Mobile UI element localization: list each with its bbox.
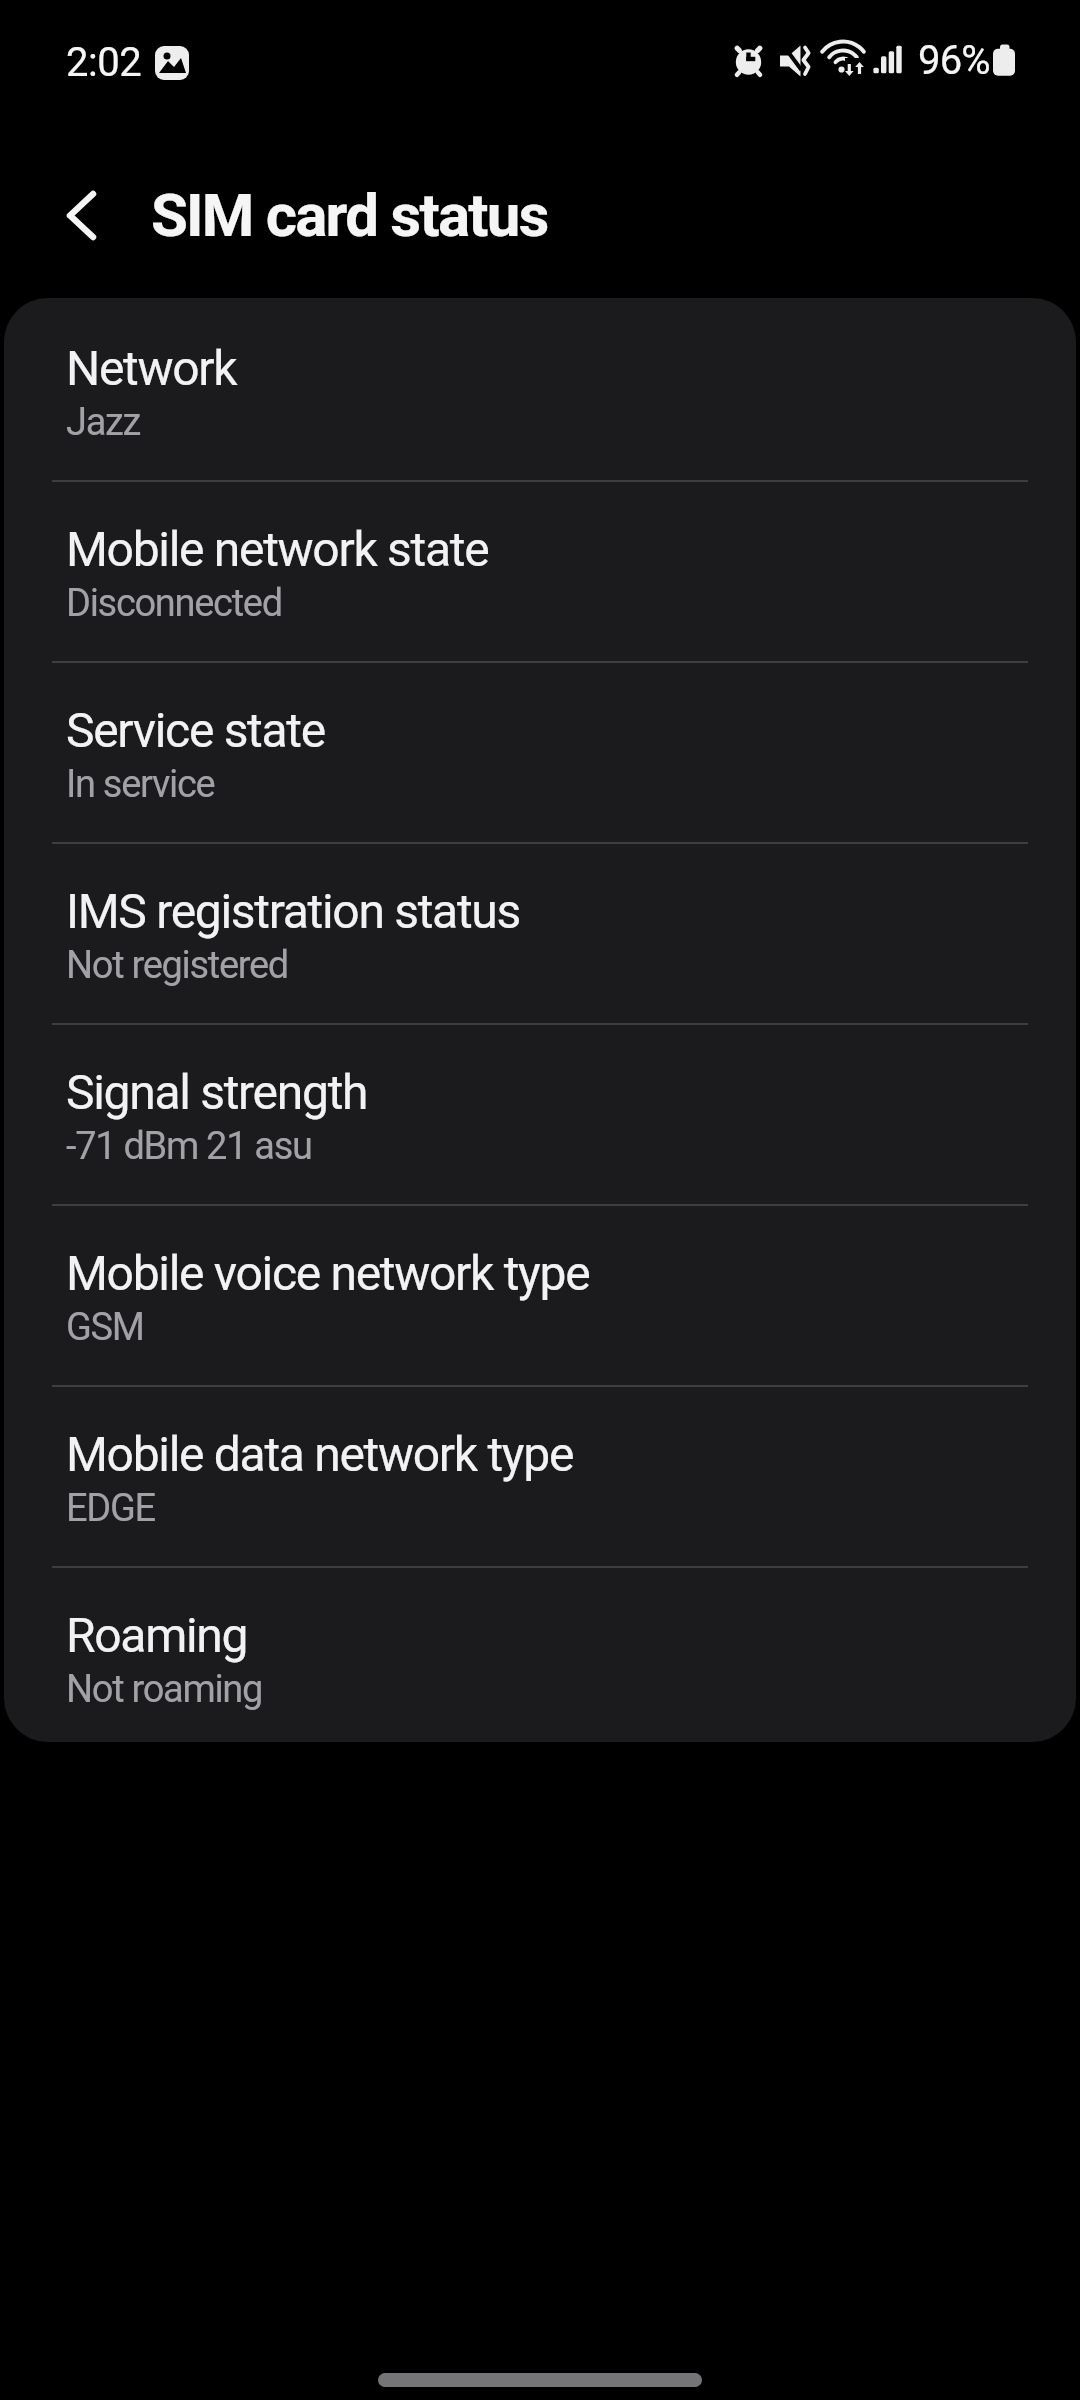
button[interactable]: Mobile network state <box>4 482 1076 661</box>
staticText: Disconnected <box>66 581 282 626</box>
staticText: Mobile network state <box>66 521 489 577</box>
staticText: Mobile data network type <box>66 1426 574 1482</box>
staticText: Not roaming <box>66 1667 263 1712</box>
staticText: Network <box>66 340 237 396</box>
staticText: Jazz <box>66 400 141 445</box>
staticText: Roaming <box>66 1607 248 1663</box>
staticText: Signal strength <box>66 1064 368 1120</box>
staticText: SIM card status <box>151 180 548 250</box>
button[interactable]: Mobile voice network type <box>4 1206 1076 1385</box>
button[interactable]: IMS registration status <box>4 844 1076 1023</box>
staticText: Service state <box>66 702 325 758</box>
staticText: 96% <box>918 37 990 84</box>
staticText: In service <box>66 762 215 807</box>
staticText: IMS registration status <box>66 883 520 939</box>
button[interactable]: Signal strength <box>4 1025 1076 1204</box>
staticText: Mobile voice network type <box>66 1245 590 1301</box>
button[interactable] <box>48 182 116 250</box>
staticText: Not registered <box>66 943 288 988</box>
button[interactable]: Mobile data network type <box>4 1387 1076 1566</box>
button[interactable]: Roaming <box>4 1568 1076 1742</box>
staticText: 2:02 <box>66 39 142 86</box>
staticText: -71 dBm 21 asu <box>66 1124 312 1169</box>
staticText: GSM <box>66 1305 144 1350</box>
button[interactable]: Network <box>4 298 1076 480</box>
button[interactable]: Service state <box>4 663 1076 842</box>
staticText: EDGE <box>66 1486 155 1531</box>
